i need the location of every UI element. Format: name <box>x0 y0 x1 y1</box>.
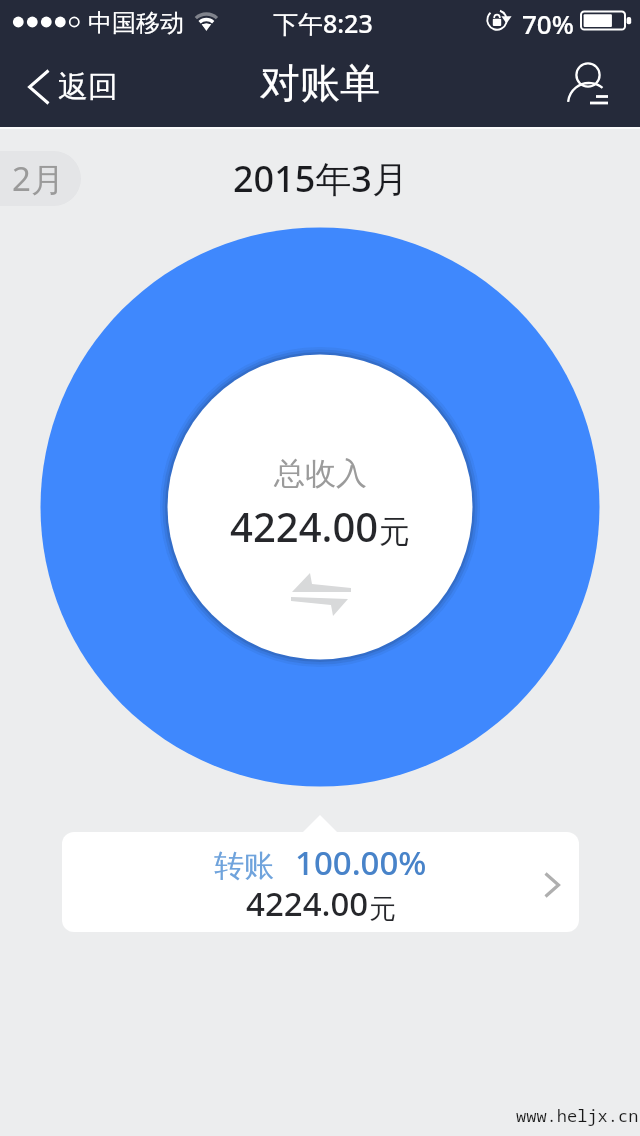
staticText: 2015年3月 <box>233 154 408 203</box>
button[interactable]: Contacts <box>560 54 624 118</box>
staticText: 总收入 <box>274 454 367 493</box>
staticText: 元 <box>369 892 396 926</box>
staticText: 4224.00 <box>246 881 369 926</box>
staticText: 100.00% <box>295 840 427 885</box>
staticText: 返回 <box>58 68 118 106</box>
staticText: 下午8:23 <box>273 6 373 40</box>
button[interactable]: 返回 <box>0 56 138 118</box>
button[interactable]: 转账 <box>62 832 579 932</box>
staticText: 中国移动 <box>88 8 184 38</box>
staticText: 转账 <box>214 847 274 885</box>
staticText: 70% <box>522 6 574 41</box>
staticText: 2月 <box>12 156 64 201</box>
staticText: 对账单 <box>260 58 380 108</box>
button[interactable]: 2月 <box>0 151 81 206</box>
staticText: 元 <box>379 512 410 551</box>
staticText: 4224.00 <box>230 499 379 553</box>
staticText: www.heljx.cn <box>516 1104 639 1127</box>
